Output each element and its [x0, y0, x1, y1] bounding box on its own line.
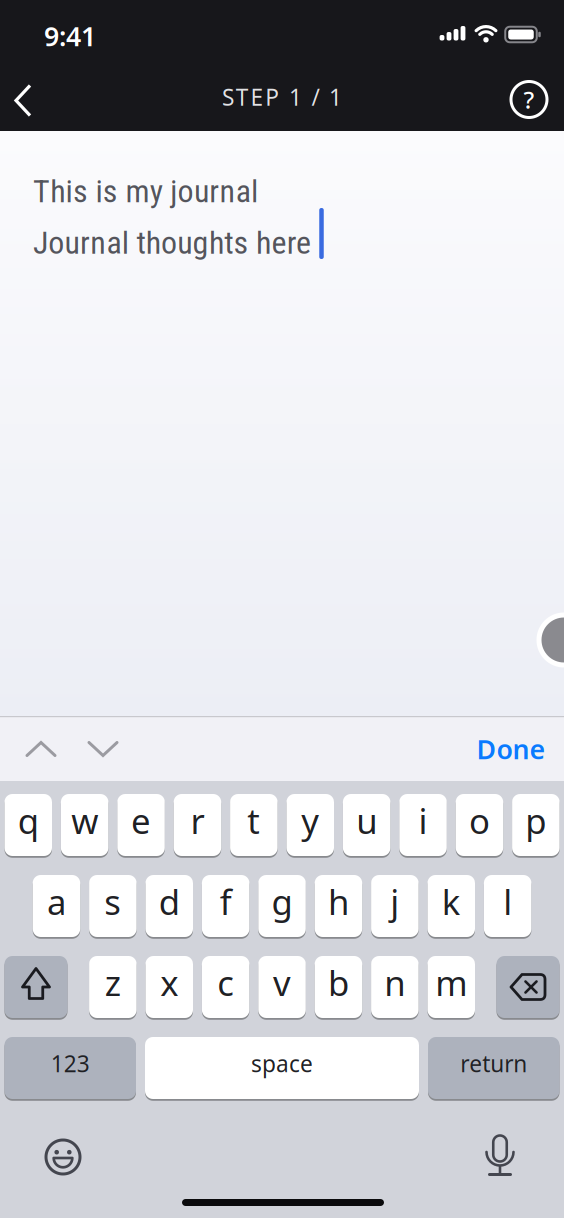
- staticText: m: [435, 959, 467, 1005]
- button[interactable]: p: [512, 794, 560, 856]
- button[interactable]: w: [61, 794, 108, 856]
- button[interactable]: Emoji: [33, 1127, 93, 1187]
- button[interactable]: z: [89, 956, 137, 1018]
- button[interactable]: h: [315, 875, 362, 937]
- button[interactable]: f: [202, 875, 249, 937]
- staticText: y: [301, 797, 319, 843]
- staticText: j: [390, 878, 399, 924]
- staticText: 123: [51, 1048, 90, 1078]
- button[interactable]: r: [174, 794, 221, 856]
- button[interactable]: c: [202, 956, 249, 1018]
- button[interactable]: i: [399, 794, 447, 856]
- staticText: t: [247, 797, 260, 843]
- staticText: i: [419, 797, 428, 843]
- staticText: d: [159, 878, 180, 924]
- button[interactable]: m: [427, 956, 475, 1018]
- button[interactable]: space: [145, 1037, 419, 1099]
- staticText: l: [503, 878, 512, 924]
- button[interactable]: o: [456, 794, 503, 856]
- button[interactable]: Done: [476, 731, 545, 767]
- button[interactable]: x: [145, 956, 193, 1018]
- button[interactable]: Back: [0, 67, 56, 132]
- button[interactable]: q: [4, 794, 52, 856]
- staticText: space: [251, 1048, 313, 1078]
- staticText: p: [525, 797, 546, 843]
- button[interactable]: e: [117, 794, 165, 856]
- staticText: STEP 1 / 1: [222, 82, 342, 112]
- staticText: x: [160, 959, 178, 1005]
- staticText: b: [328, 959, 349, 1005]
- button[interactable]: s: [89, 875, 137, 937]
- staticText: Done: [476, 731, 545, 767]
- button[interactable]: b: [315, 956, 362, 1018]
- button[interactable]: 123: [4, 1037, 136, 1099]
- staticText: This is my journal: [33, 172, 258, 210]
- button[interactable]: Next field: [75, 728, 131, 769]
- staticText: q: [18, 797, 39, 843]
- staticText: Journal thoughts here: [33, 224, 311, 261]
- staticText: w: [71, 797, 98, 843]
- button[interactable]: l: [484, 875, 531, 937]
- button[interactable]: d: [145, 875, 193, 937]
- staticText: u: [356, 797, 377, 843]
- staticText: g: [272, 878, 293, 924]
- staticText: v: [273, 959, 291, 1005]
- staticText: s: [104, 878, 121, 924]
- button[interactable]: u: [343, 794, 390, 856]
- button[interactable]: j: [371, 875, 419, 937]
- staticText: n: [384, 959, 405, 1005]
- button[interactable]: Open side panel: [536, 612, 564, 667]
- staticText: k: [442, 878, 461, 924]
- button[interactable]: y: [286, 794, 334, 856]
- button[interactable]: g: [258, 875, 306, 937]
- staticText: h: [328, 878, 349, 924]
- staticText: z: [105, 959, 121, 1005]
- button[interactable]: Previous field: [13, 728, 69, 769]
- staticText: e: [131, 797, 151, 843]
- button[interactable]: v: [258, 956, 306, 1018]
- staticText: r: [190, 797, 204, 843]
- button[interactable]: n: [371, 956, 419, 1018]
- button[interactable]: a: [33, 875, 80, 937]
- button[interactable]: k: [427, 875, 475, 937]
- staticText: ?: [523, 84, 534, 115]
- staticText: o: [469, 797, 490, 843]
- staticText: c: [217, 959, 234, 1005]
- staticText: f: [220, 878, 232, 924]
- button[interactable]: t: [230, 794, 278, 856]
- button[interactable]: Shift: [4, 956, 67, 1018]
- button[interactable]: Help: [505, 75, 553, 123]
- button[interactable]: Delete: [496, 956, 559, 1018]
- button[interactable]: Dictation: [470, 1127, 530, 1187]
- staticText: return: [460, 1048, 527, 1078]
- staticText: a: [47, 878, 66, 924]
- button[interactable]: return: [428, 1037, 559, 1099]
- staticText: 9:41: [44, 18, 96, 54]
